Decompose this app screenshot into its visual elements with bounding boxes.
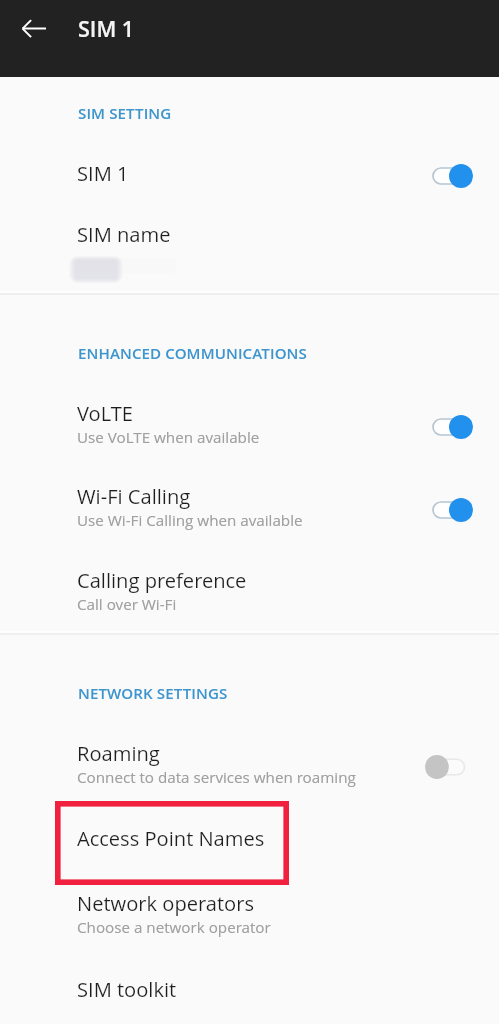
- staticText: NETWORK SETTINGS: [78, 683, 228, 704]
- button[interactable]: [0, 140, 499, 200]
- staticText: VoLTE: [77, 400, 134, 427]
- staticText: Call over Wi-Fi: [77, 594, 177, 615]
- staticText: Choose a network operator: [77, 917, 271, 938]
- button[interactable]: Toggle off: [425, 747, 473, 787]
- staticText: SIM SETTING: [78, 103, 172, 124]
- button[interactable]: [0, 801, 499, 885]
- staticText: Use VoLTE when available: [77, 427, 260, 448]
- staticText: Network operators: [77, 890, 254, 917]
- button[interactable]: [0, 955, 499, 1024]
- staticText: SIM 1: [78, 14, 135, 43]
- button[interactable]: [0, 380, 499, 458]
- button[interactable]: [0, 885, 499, 955]
- staticText: Wi-Fi Calling: [77, 483, 191, 510]
- staticText: Access Point Names: [77, 825, 265, 852]
- staticText: SIM name: [77, 221, 171, 248]
- button[interactable]: [0, 720, 499, 800]
- button[interactable]: Toggle on: [425, 407, 473, 447]
- button[interactable]: Back: [10, 5, 57, 52]
- button[interactable]: [0, 205, 499, 291]
- staticText: Roaming: [77, 740, 160, 767]
- staticText: SIM 1: [77, 160, 129, 187]
- staticText: SIM toolkit: [77, 976, 177, 1003]
- staticText: ENHANCED COMMUNICATIONS: [78, 343, 307, 364]
- staticText: Use Wi-Fi Calling when available: [77, 510, 303, 531]
- button[interactable]: [0, 545, 499, 631]
- button[interactable]: [0, 460, 499, 543]
- button[interactable]: Toggle on: [425, 490, 473, 530]
- staticText: Connect to data services when roaming: [77, 767, 356, 788]
- staticText: Calling preference: [77, 567, 247, 594]
- button[interactable]: Toggle on: [425, 156, 473, 196]
